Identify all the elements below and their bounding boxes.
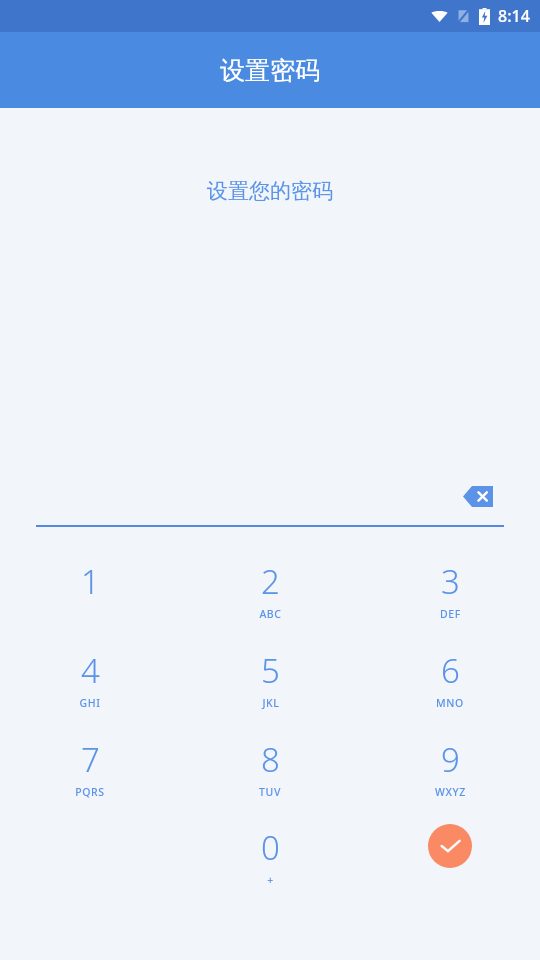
staticText: 1 <box>81 559 100 604</box>
staticText: 0 <box>261 825 280 870</box>
button[interactable]: Confirm <box>428 824 472 868</box>
staticText: + <box>267 873 274 887</box>
staticText: 2 <box>261 559 280 604</box>
staticText: 设置您的密码 <box>0 178 540 204</box>
button[interactable]: Delete <box>458 476 498 516</box>
button[interactable]: 6 <box>360 634 540 723</box>
staticText: WXYZ <box>435 785 466 799</box>
button[interactable]: 1 <box>0 545 180 634</box>
button[interactable]: 0 <box>180 812 360 900</box>
staticText: 3 <box>441 559 460 604</box>
button[interactable]: 9 <box>360 723 540 812</box>
staticText: DEF <box>440 607 461 621</box>
staticText: 4 <box>81 648 100 693</box>
staticText: 9 <box>441 737 460 782</box>
button[interactable]: 7 <box>0 723 180 812</box>
staticText: 5 <box>261 648 280 693</box>
staticText: 7 <box>81 737 100 782</box>
button[interactable]: 2 <box>180 545 360 634</box>
staticText: GHI <box>79 696 101 710</box>
button[interactable]: 3 <box>360 545 540 634</box>
staticText: 设置密码 <box>220 55 320 86</box>
staticText: PQRS <box>75 785 105 799</box>
staticText: TUV <box>259 785 281 799</box>
staticText: MNO <box>436 696 464 710</box>
staticText: ABC <box>259 607 282 621</box>
button[interactable]: 4 <box>0 634 180 723</box>
button[interactable]: 5 <box>180 634 360 723</box>
staticText: 8 <box>261 737 280 782</box>
staticText: JKL <box>262 696 280 710</box>
staticText: 8:14 <box>498 5 530 27</box>
staticText: 6 <box>441 648 460 693</box>
button[interactable]: 8 <box>180 723 360 812</box>
